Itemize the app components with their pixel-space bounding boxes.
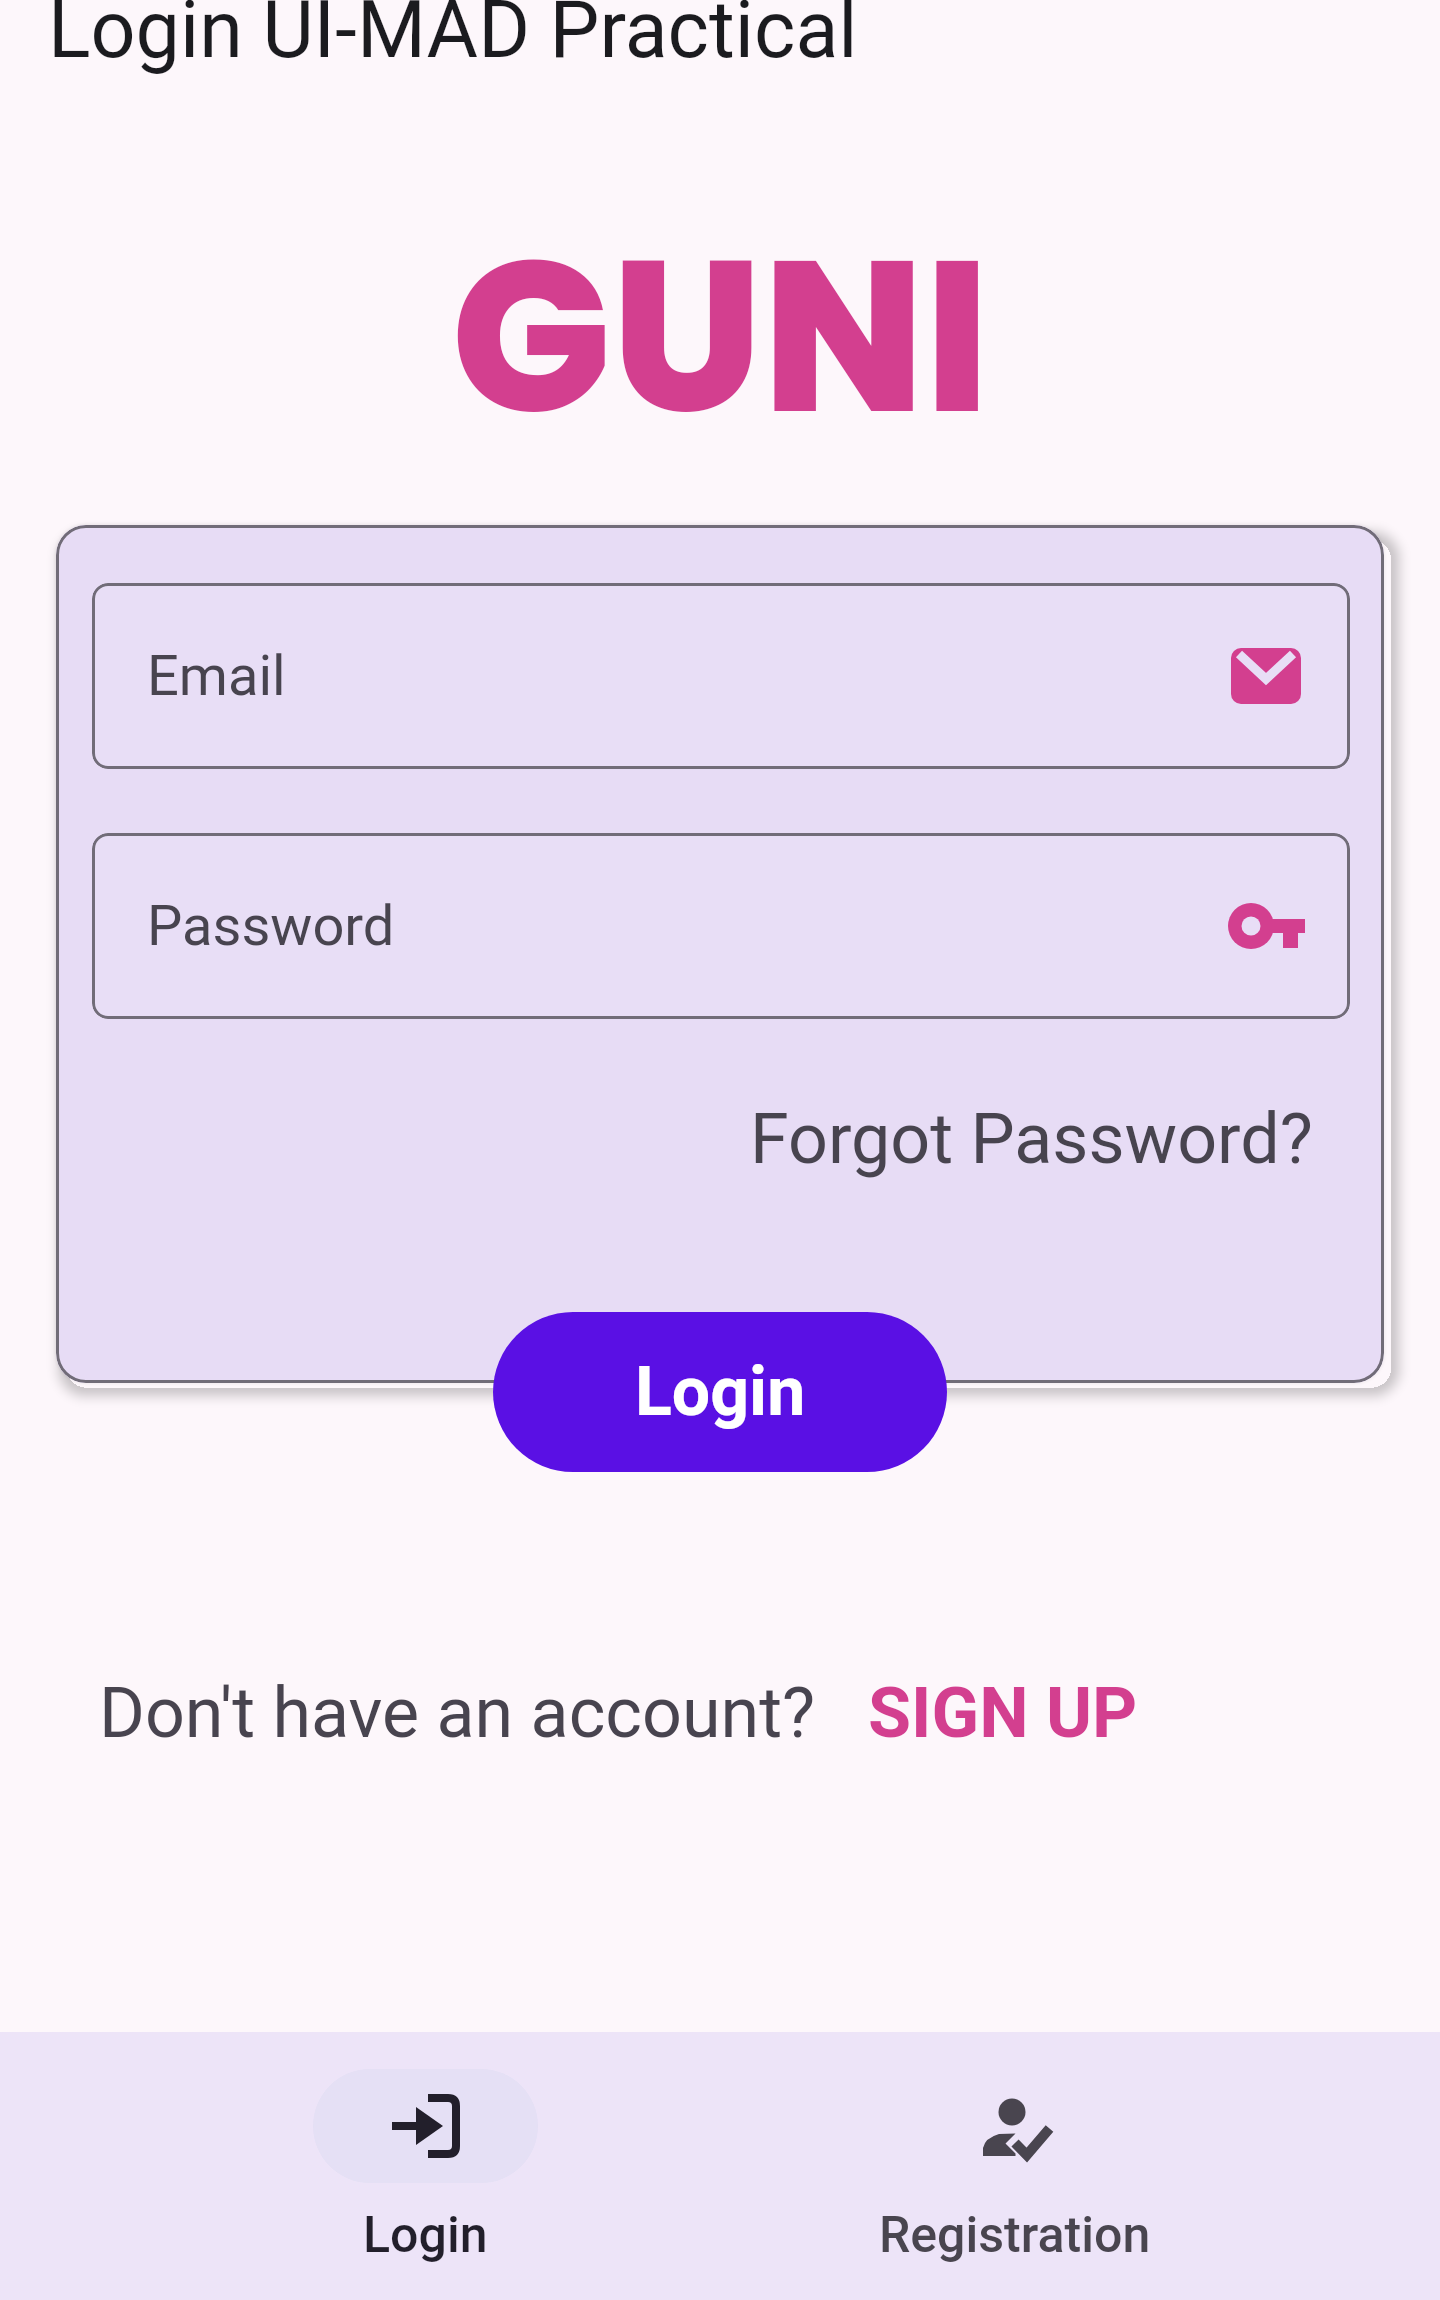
staticText: Login xyxy=(363,2206,488,2265)
staticText: Don't have an account? xyxy=(99,1672,816,1754)
button[interactable]: Login xyxy=(130,2032,720,2265)
button[interactable]: Password xyxy=(147,833,1305,1019)
staticText: Registration xyxy=(879,2206,1151,2265)
staticText: Login UI-MAD Practical xyxy=(48,0,858,77)
button[interactable]: Registration xyxy=(720,2032,1310,2265)
staticText: Email xyxy=(147,643,286,709)
staticText: Login xyxy=(635,1352,806,1432)
button[interactable]: Forgot Password? xyxy=(750,1098,1313,1180)
staticText: GUNI xyxy=(451,188,990,485)
button[interactable]: Email xyxy=(147,583,1305,769)
button[interactable]: SIGN UP xyxy=(868,1672,1138,1754)
staticText: Password xyxy=(147,893,395,959)
button[interactable]: Login xyxy=(493,1312,947,1472)
